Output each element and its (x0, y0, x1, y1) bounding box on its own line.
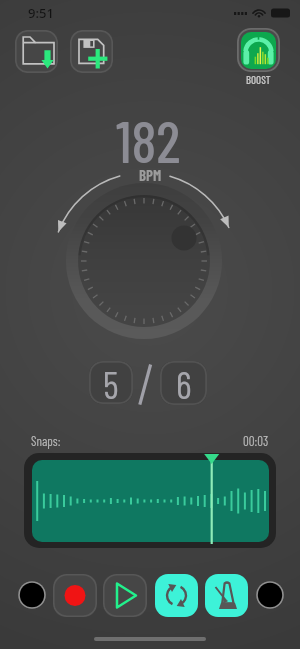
staticText: BPM (139, 166, 162, 184)
staticText: 182 (116, 105, 181, 175)
button[interactable]: Save project (70, 30, 113, 73)
button[interactable]: Waveform (24, 453, 276, 548)
staticText: 9:51 (28, 4, 54, 22)
button[interactable]: Loop (155, 574, 198, 617)
staticText: 00:03 (243, 433, 269, 449)
staticText: Snaps: (31, 433, 61, 449)
button[interactable]: Open project (15, 30, 58, 73)
button[interactable]: 5 (89, 361, 133, 404)
staticText: BOOST (246, 73, 271, 86)
button[interactable]: Metronome (205, 574, 248, 617)
button[interactable]: Play (103, 574, 147, 617)
button[interactable]: Record (53, 574, 97, 617)
button[interactable]: Boost (237, 28, 280, 72)
staticText: 5 (103, 361, 119, 404)
button[interactable]: 6 (160, 361, 207, 405)
staticText: 6 (176, 361, 192, 405)
